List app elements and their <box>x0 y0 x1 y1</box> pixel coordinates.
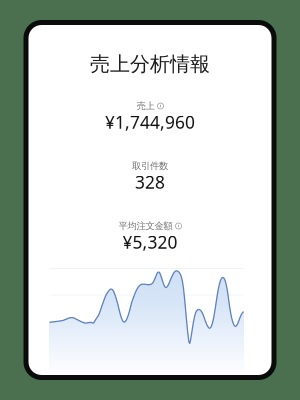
staticText: 売上分析情報 <box>90 52 210 76</box>
staticText: ¥5,320 <box>122 230 177 253</box>
staticText: 取引件数 <box>132 160 168 172</box>
staticText: 328 <box>135 170 165 193</box>
staticText: 売上 <box>136 100 154 112</box>
staticText: 平均注文金額 <box>118 220 172 232</box>
staticText: ¥1,744,960 <box>105 110 195 133</box>
